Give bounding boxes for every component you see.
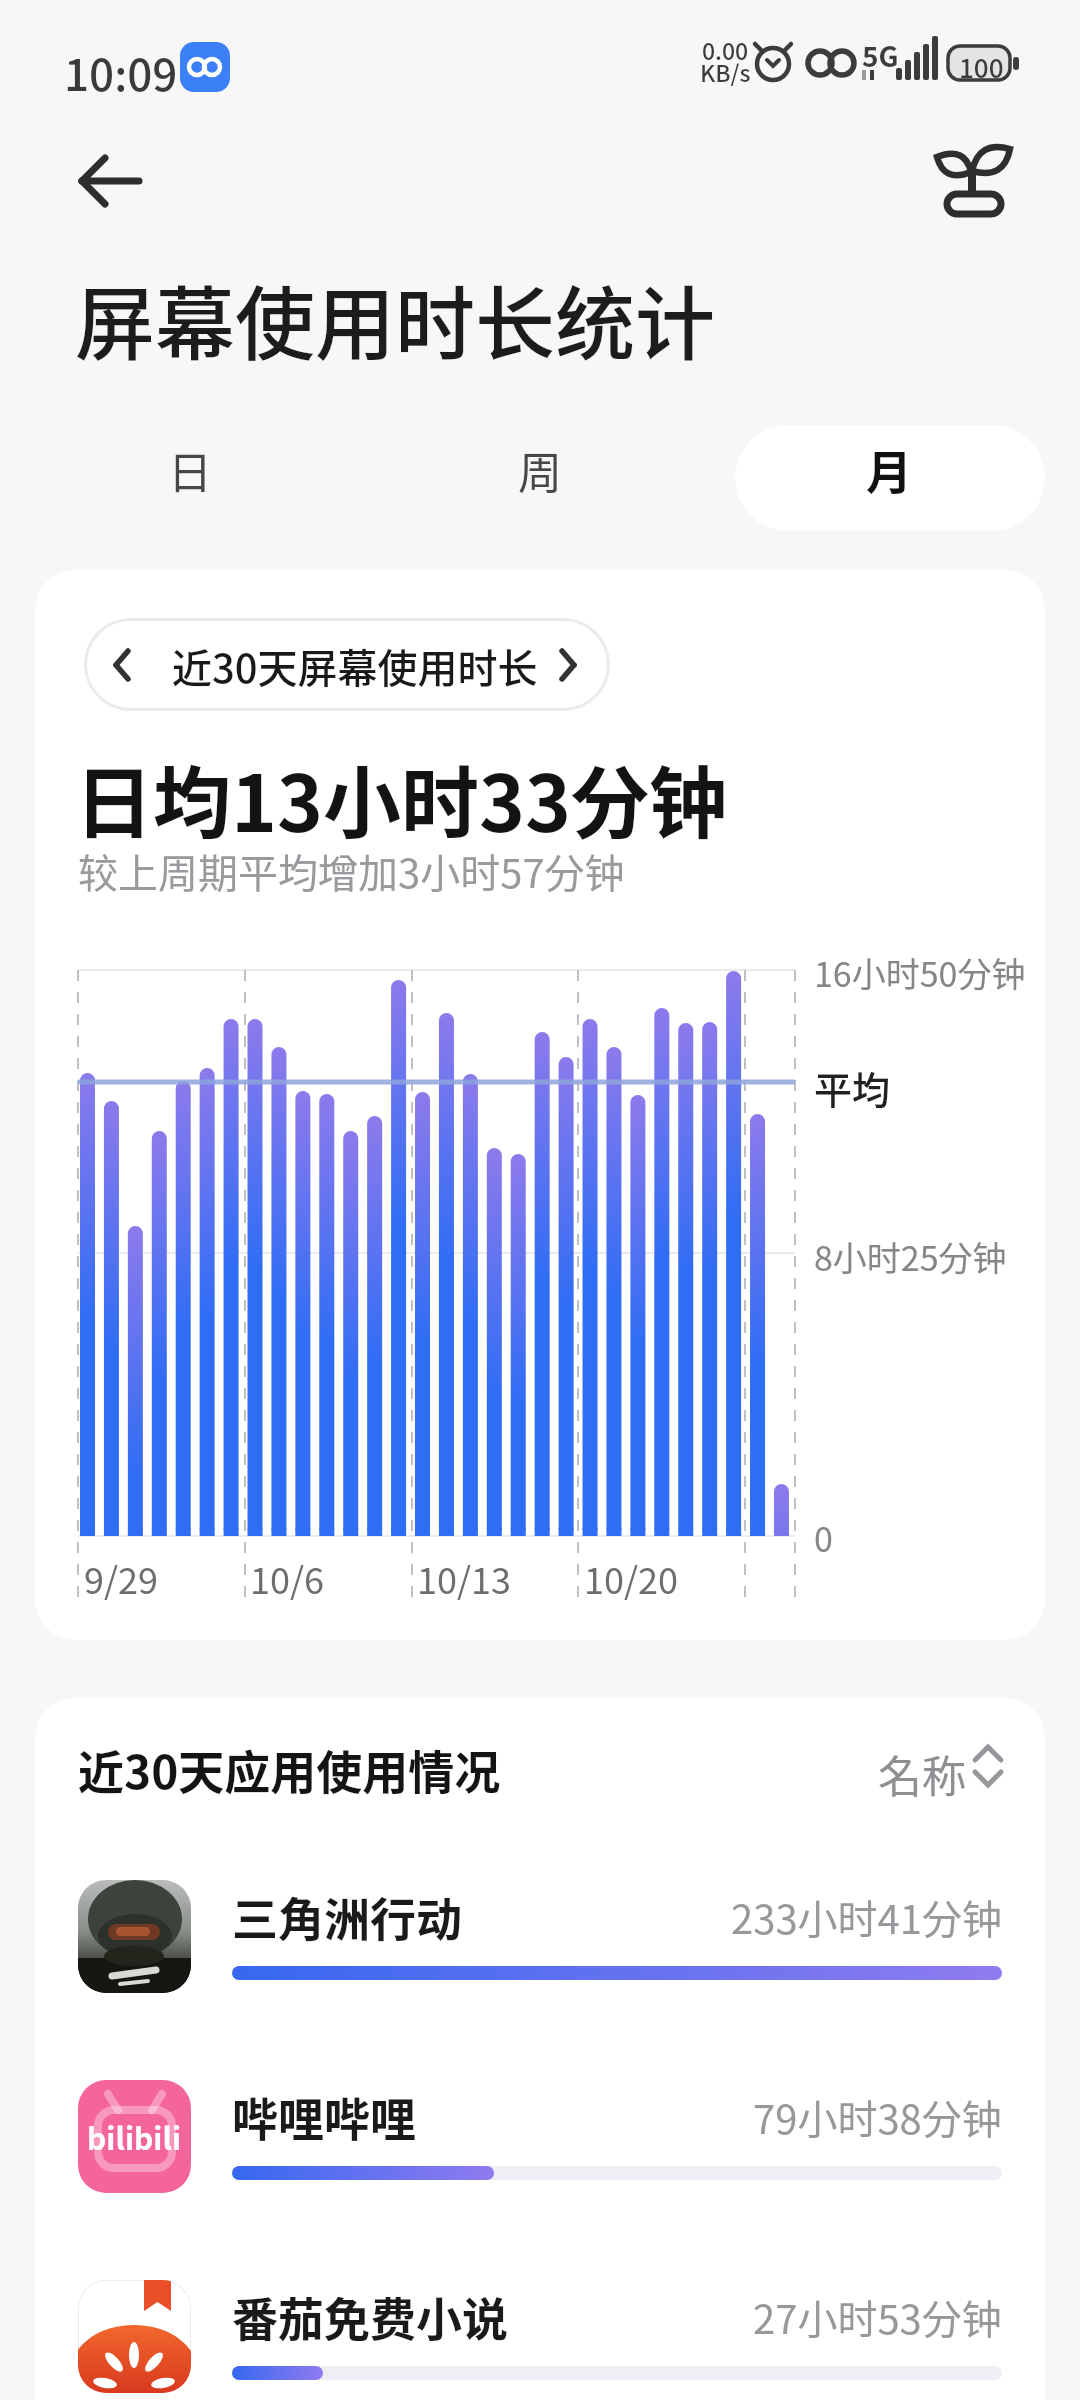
staticText: 79小时38分钟: [753, 2088, 1002, 2146]
button[interactable]: [735, 425, 1045, 531]
button[interactable]: [860, 1725, 1020, 1800]
button[interactable]: [925, 140, 1025, 230]
staticText: 233小时41分钟: [731, 1888, 1002, 1946]
staticText: 10:09: [64, 40, 178, 104]
staticText: 哔哩哔哩: [232, 2083, 416, 2150]
staticText: 近30天应用使用情况: [78, 1736, 501, 1803]
staticText: 月: [866, 436, 912, 503]
staticText: 周: [518, 438, 562, 502]
staticText: KB/s: [700, 55, 751, 88]
staticText: 10/20: [584, 1552, 679, 1604]
staticText: 三角洲行动: [232, 1883, 462, 1950]
button[interactable]: [60, 2070, 1020, 2205]
staticText: 0: [814, 1513, 833, 1562]
staticText: 平均: [814, 1060, 891, 1115]
staticText: 屏幕使用时长统计: [75, 260, 715, 376]
staticText: 10/6: [250, 1552, 325, 1604]
staticText: 番茄免费小说: [232, 2283, 508, 2350]
staticText: 5G: [862, 35, 899, 76]
staticText: 近30天屏幕使用时长: [172, 637, 538, 695]
button[interactable]: [60, 140, 160, 224]
staticText: 16小时50分钟: [814, 948, 1026, 997]
staticText: 日: [168, 438, 212, 502]
staticText: 10/13: [417, 1552, 512, 1604]
staticText: 日均13小时33分钟: [75, 742, 728, 855]
button[interactable]: [371, 425, 708, 531]
staticText: 8小时25分钟: [814, 1232, 1007, 1281]
staticText: 27小时53分钟: [753, 2288, 1002, 2346]
button[interactable]: [35, 425, 371, 531]
staticText: 名称: [878, 1742, 966, 1806]
staticText: 0.00: [702, 33, 749, 66]
button[interactable]: [60, 2270, 1020, 2400]
staticText: 100: [959, 48, 1004, 86]
staticText: 较上周期平均增加3小时57分钟: [78, 842, 625, 900]
button[interactable]: [84, 618, 610, 711]
staticText: 9/29: [84, 1552, 159, 1604]
staticText: bilibili: [87, 2115, 182, 2158]
button[interactable]: [60, 1870, 1020, 2005]
